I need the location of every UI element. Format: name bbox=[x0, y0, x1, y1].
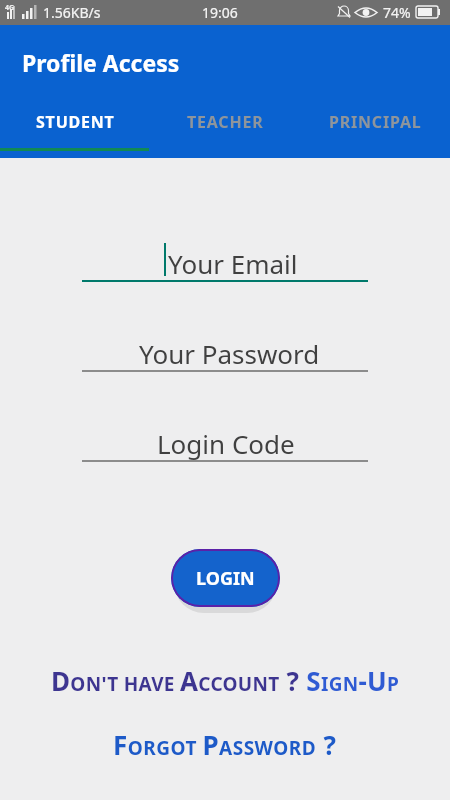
staticText: Login Code bbox=[157, 426, 295, 461]
staticText: 19:06 bbox=[202, 3, 238, 22]
staticText: Your Email bbox=[168, 246, 298, 281]
staticText: LOGIN bbox=[196, 566, 255, 591]
staticText: STUDENT bbox=[36, 111, 115, 133]
staticText: TEACHER bbox=[187, 111, 264, 133]
staticText: 4G bbox=[5, 3, 15, 13]
button[interactable]: TEACHER bbox=[150, 101, 300, 143]
button[interactable] bbox=[82, 238, 368, 282]
staticText: PRINCIPAL bbox=[329, 111, 422, 133]
staticText: FORGOT PASSWORD ? bbox=[113, 727, 337, 762]
button[interactable] bbox=[82, 418, 368, 462]
button[interactable]: FORGOT PASSWORD ? bbox=[0, 724, 450, 764]
staticText: 1.56KB/s bbox=[43, 3, 101, 22]
staticText: DON'T HAVE ACCOUNT ? SIGN-UP bbox=[51, 663, 400, 698]
button[interactable]: PRINCIPAL bbox=[300, 101, 450, 143]
button[interactable]: DON'T HAVE ACCOUNT ? SIGN-UP bbox=[0, 660, 450, 700]
button[interactable]: LOGIN bbox=[171, 549, 280, 607]
staticText: 74% bbox=[383, 3, 411, 22]
button[interactable]: STUDENT bbox=[0, 101, 150, 143]
button[interactable] bbox=[82, 328, 368, 372]
staticText: Profile Access bbox=[22, 47, 180, 78]
staticText: Your Password bbox=[139, 336, 320, 371]
